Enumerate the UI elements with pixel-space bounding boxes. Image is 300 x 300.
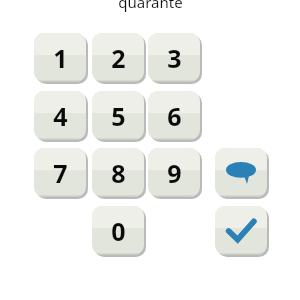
staticText: 3 [167,41,182,75]
button[interactable]: Hint [215,148,267,197]
button[interactable]: 7 [34,148,86,197]
button[interactable]: 3 [148,33,200,82]
staticText: 9 [167,156,182,190]
button[interactable]: 6 [148,91,200,140]
button[interactable]: 4 [34,91,86,140]
staticText: 4 [53,99,68,133]
staticText: 6 [167,99,182,133]
button[interactable]: 5 [92,91,144,140]
staticText: 0 [111,214,126,248]
button[interactable]: 0 [92,206,144,255]
staticText: 5 [111,99,126,133]
button[interactable]: 2 [92,33,144,82]
staticText: 7 [53,156,68,190]
button[interactable]: 1 [34,33,86,82]
button[interactable]: 9 [148,148,200,197]
button[interactable]: Validate [215,206,267,255]
button[interactable]: 8 [92,148,144,197]
staticText: 2 [111,41,126,75]
staticText: 1 [53,41,68,75]
staticText: quarante [118,0,183,12]
staticText: 8 [111,156,126,190]
